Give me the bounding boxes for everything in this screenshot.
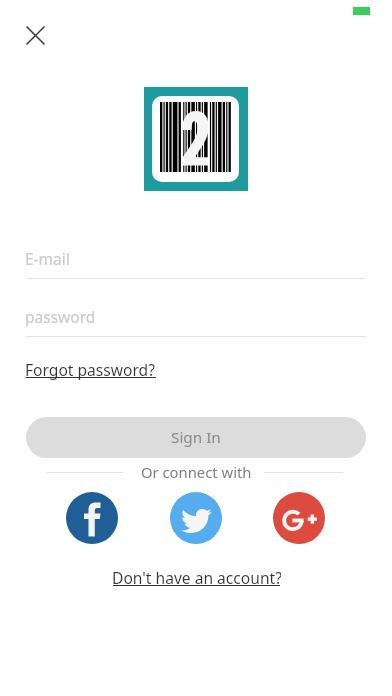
button[interactable]: Sign in with Twitter [170, 492, 222, 544]
button[interactable]: Forgot password? [25, 359, 158, 381]
staticText: Don't have an account? [112, 567, 281, 588]
button[interactable]: Sign in with Facebook [66, 492, 118, 544]
staticText: Or connect with [141, 462, 252, 482]
staticText: Forgot password? [25, 359, 155, 380]
button[interactable]: Close [18, 18, 52, 52]
button[interactable]: Sign In [26, 417, 366, 458]
staticText: E-mail [25, 248, 70, 269]
staticText: password [25, 306, 96, 327]
button[interactable]: Don't have an account? [112, 567, 281, 589]
staticText: Sign In [171, 427, 221, 448]
button[interactable]: Sign in with Google Plus [273, 492, 325, 544]
